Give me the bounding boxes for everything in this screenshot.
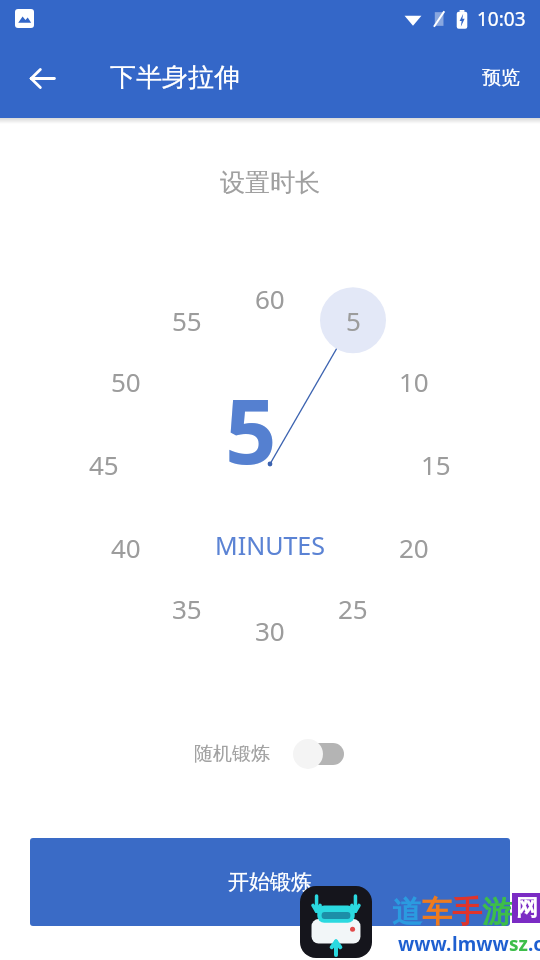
- staticText: sz: [509, 931, 528, 957]
- staticText: 40: [111, 530, 141, 564]
- staticText: MINUTES: [215, 528, 325, 562]
- button[interactable]: 10: [396, 364, 432, 398]
- button[interactable]: Back: [14, 50, 70, 106]
- button[interactable]: 40: [108, 530, 144, 564]
- staticText: 20: [399, 530, 429, 564]
- staticText: 60: [255, 281, 285, 315]
- staticText: 设置时长: [220, 167, 320, 198]
- staticText: 预览: [482, 66, 520, 90]
- staticText: 30: [255, 613, 285, 647]
- button[interactable]: 30: [252, 613, 288, 647]
- staticText: 手: [452, 893, 482, 931]
- button[interactable]: 45: [86, 447, 122, 481]
- staticText: 5: [225, 368, 277, 491]
- staticText: 10:03: [477, 6, 526, 32]
- staticText: 车: [422, 893, 452, 931]
- button[interactable]: 15: [418, 447, 454, 481]
- button[interactable]: 随机锻炼: [186, 730, 354, 778]
- staticText: 35: [172, 591, 202, 625]
- staticText: .com: [528, 931, 540, 957]
- staticText: 25: [338, 591, 368, 625]
- button[interactable]: 60: [252, 281, 288, 315]
- button[interactable]: 开始锻炼: [30, 838, 510, 926]
- staticText: 50: [111, 364, 141, 398]
- staticText: 游: [482, 893, 512, 931]
- staticText: 下半身拉伸: [110, 61, 240, 94]
- button[interactable]: 50: [108, 364, 144, 398]
- button[interactable]: 5: [344, 303, 362, 337]
- staticText: 5: [346, 303, 361, 337]
- staticText: 45: [89, 447, 119, 481]
- staticText: 15: [421, 447, 451, 481]
- staticText: 道: [392, 893, 422, 931]
- button[interactable]: 55: [169, 303, 205, 337]
- button[interactable]: 20: [396, 530, 432, 564]
- button[interactable]: 25: [335, 591, 371, 625]
- button[interactable]: 35: [169, 591, 205, 625]
- button[interactable]: 预览: [470, 54, 532, 102]
- staticText: 55: [172, 303, 202, 337]
- staticText: lmww: [452, 931, 509, 957]
- staticText: 开始锻炼: [228, 869, 312, 895]
- staticText: 网: [516, 894, 538, 922]
- staticText: www.: [398, 931, 452, 957]
- staticText: 随机锻炼: [194, 742, 270, 766]
- staticText: 10: [399, 364, 429, 398]
